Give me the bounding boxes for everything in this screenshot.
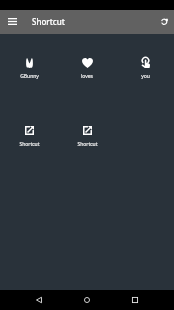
staticText: GBunny <box>20 73 39 80</box>
staticText: Shortcut <box>19 141 40 148</box>
staticText: Shortcut <box>32 16 65 27</box>
button[interactable]: Shortcut <box>58 123 116 150</box>
staticText: Shortcut <box>77 141 98 148</box>
staticText: loves <box>81 73 93 80</box>
button[interactable]: Shortcut <box>0 123 58 150</box>
button[interactable]: Home <box>72 290 102 310</box>
button[interactable]: loves <box>58 55 116 82</box>
staticText: you <box>141 73 150 80</box>
button[interactable]: Back <box>24 290 54 310</box>
button[interactable]: Open navigation menu <box>0 9 24 33</box>
button[interactable]: you <box>116 55 174 82</box>
button[interactable]: Recent apps <box>120 290 150 310</box>
button[interactable]: Refresh <box>152 9 174 33</box>
button[interactable]: GBunny <box>0 55 58 82</box>
